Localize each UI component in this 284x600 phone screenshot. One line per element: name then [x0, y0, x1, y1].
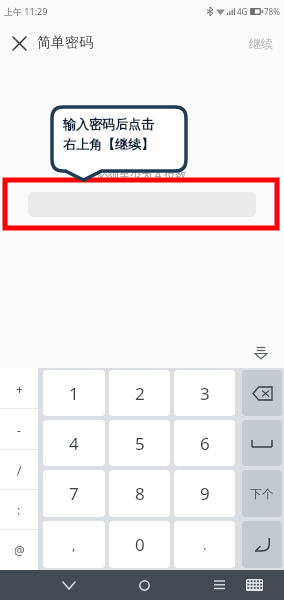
button[interactable]: 0	[109, 521, 170, 568]
staticText: +	[16, 381, 23, 397]
button[interactable]: 3	[174, 370, 235, 416]
button[interactable]: Next	[242, 470, 282, 517]
button[interactable]: Close	[4, 28, 34, 58]
staticText: 7	[69, 482, 79, 505]
button[interactable]: 5	[109, 420, 170, 466]
staticText: .	[203, 536, 207, 554]
staticText: 继续	[249, 36, 273, 51]
staticText: 简单密码	[37, 34, 93, 52]
staticText: :	[17, 502, 21, 518]
button[interactable]: Back	[54, 570, 84, 600]
staticText: 9	[200, 482, 210, 505]
button[interactable]: /	[0, 450, 38, 490]
staticText: 2	[135, 382, 145, 405]
staticText: 0	[135, 533, 145, 556]
staticText: -	[17, 422, 21, 438]
staticText: @	[14, 542, 25, 558]
button[interactable]: Recents	[204, 570, 234, 600]
button[interactable]: 继续	[238, 27, 284, 60]
staticText: 6	[200, 432, 210, 455]
staticText: 4G	[237, 6, 248, 17]
staticText: /	[17, 462, 22, 478]
button[interactable]: -	[0, 409, 38, 450]
button[interactable]: +	[0, 368, 38, 409]
button[interactable]: 4	[43, 420, 105, 466]
button[interactable]: 1	[43, 370, 105, 416]
button[interactable]: Switch keyboard	[240, 571, 268, 599]
staticText: ,	[72, 536, 76, 554]
button[interactable]: 6	[174, 420, 235, 466]
button[interactable]: Home	[129, 570, 159, 600]
staticText: 必须至少为 4 位数	[97, 167, 187, 182]
staticText: 上午 11:29	[4, 5, 48, 17]
button[interactable]: .	[174, 521, 235, 568]
staticText: 8	[135, 482, 145, 505]
button[interactable]: @	[0, 530, 38, 570]
staticText: 下个	[250, 486, 274, 501]
button[interactable]: Hide keyboard	[249, 340, 273, 364]
button[interactable]: 7	[43, 470, 105, 517]
button[interactable]: ,	[43, 521, 105, 568]
button[interactable]: 8	[109, 470, 170, 517]
staticText: 输入密码后点击	[63, 116, 154, 132]
staticText: 右上角【继续】	[63, 136, 154, 152]
staticText: 78%	[264, 6, 280, 17]
staticText: 3	[200, 382, 210, 405]
button[interactable]: 9	[174, 470, 235, 517]
staticText: 4	[69, 432, 79, 455]
staticText: 5	[135, 432, 145, 455]
button[interactable]: :	[0, 490, 38, 530]
staticText: 1	[69, 382, 79, 405]
button[interactable]: Backspace	[242, 370, 282, 416]
button[interactable]: Space	[242, 420, 282, 466]
button[interactable]: Enter	[242, 521, 282, 568]
button[interactable]: 2	[109, 370, 170, 416]
